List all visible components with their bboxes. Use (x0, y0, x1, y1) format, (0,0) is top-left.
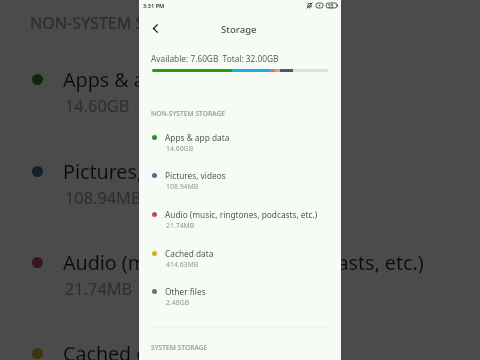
staticText: 414.63MB (166, 260, 199, 269)
staticText: SYSTEM STORAGE (151, 343, 208, 352)
staticText: Other files (165, 286, 206, 297)
staticText: Cached data (165, 248, 214, 259)
button[interactable]: Navigate up (147, 20, 163, 36)
staticText: Audio (music, ringtones, podcasts, etc.) (63, 249, 424, 276)
staticText: Apps & app data (165, 132, 230, 143)
staticText: 108.94MB (65, 187, 142, 209)
staticText: Pictures, videos (165, 170, 226, 181)
staticText: Storage (221, 23, 257, 36)
staticText: 14.60GB (65, 95, 130, 117)
staticText: 21.74MB (65, 278, 133, 300)
staticText: Audio (music, ringtones, podcasts, etc.) (165, 209, 318, 220)
staticText: NON-SYSTEM STORAGE (151, 109, 225, 118)
staticText: 55 (328, 3, 334, 10)
staticText: 3:31 PM (143, 2, 165, 10)
staticText: 108.94MB (166, 182, 199, 191)
staticText: Available: 7.60GB Total: 32.00GB (151, 53, 279, 64)
staticText: Apps & app data (63, 66, 216, 93)
button[interactable]: Pictures, videos (139, 164, 341, 198)
staticText: NON-SYSTEM STORAGE (30, 12, 206, 34)
staticText: 2.48GB (166, 298, 190, 307)
button[interactable]: Cached data (139, 242, 341, 276)
staticText: 21.74MB (166, 221, 195, 230)
staticText: 14.60GB (166, 144, 194, 153)
button[interactable]: Apps & app data (139, 126, 341, 160)
staticText: Cached data (63, 340, 178, 360)
button[interactable]: Other files (139, 280, 341, 314)
staticText: Pictures, videos (63, 158, 207, 185)
button[interactable]: Audio (music, ringtones, podcasts, etc.) (139, 203, 341, 237)
